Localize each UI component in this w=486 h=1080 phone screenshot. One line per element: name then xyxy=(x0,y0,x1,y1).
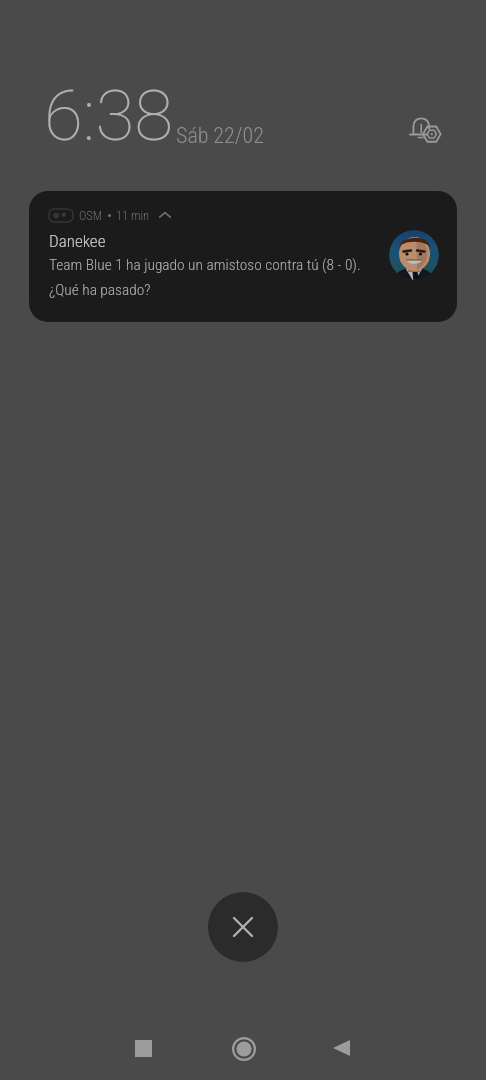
button[interactable]: Back xyxy=(318,1025,364,1071)
button[interactable]: OSM xyxy=(29,191,457,322)
button[interactable]: Notification settings xyxy=(406,109,443,146)
button[interactable]: Home xyxy=(221,1026,267,1072)
staticText: Sáb 22/02 xyxy=(176,123,264,149)
staticText: Danekee xyxy=(49,231,106,251)
button[interactable]: Close xyxy=(208,892,278,962)
staticText: 6:38 xyxy=(44,74,174,157)
button[interactable]: Recents xyxy=(120,1025,166,1071)
staticText: 11 min xyxy=(116,208,150,222)
button[interactable]: Collapse notification xyxy=(156,208,174,222)
staticText: OSM xyxy=(79,208,103,222)
staticText: Team Blue 1 ha jugado un amistoso contra… xyxy=(49,256,361,299)
